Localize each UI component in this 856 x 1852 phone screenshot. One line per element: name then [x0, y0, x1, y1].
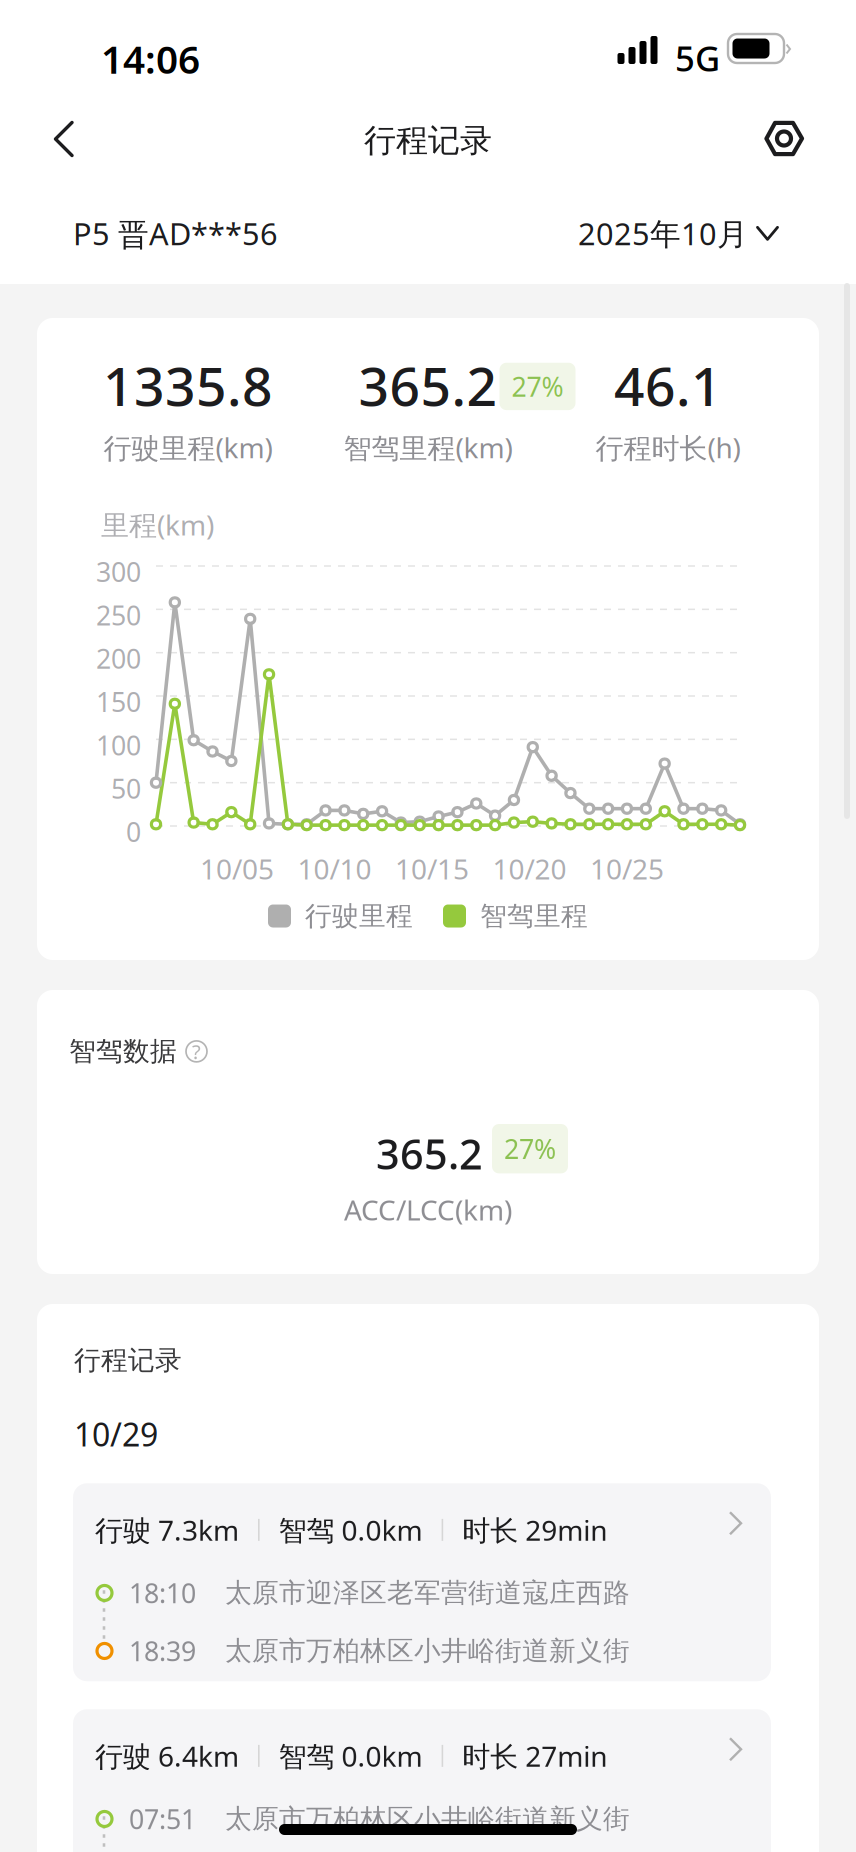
- button[interactable]: 2025年10月: [572, 199, 785, 268]
- staticText: 里程(km): [101, 506, 214, 543]
- staticText: 300: [96, 554, 141, 589]
- staticText: 250: [96, 597, 141, 633]
- staticText: 10/05: [200, 850, 274, 887]
- button[interactable]: 行驶 6.4km: [73, 1709, 771, 1852]
- staticText: 时长 27min: [462, 1737, 607, 1774]
- staticText: 行驶里程(km): [103, 429, 272, 466]
- staticText: 行驶里程: [305, 900, 413, 932]
- staticText: 07:51: [129, 1801, 196, 1837]
- staticText: 100: [96, 727, 141, 763]
- staticText: 10/10: [297, 850, 371, 887]
- staticText: 18:10: [129, 1575, 196, 1611]
- staticText: 太原市万柏林区小井峪街道新义街: [225, 1635, 630, 1667]
- staticText: 行驶 7.3km: [95, 1511, 239, 1548]
- staticText: 行程记录: [364, 121, 492, 160]
- staticText: 365.2: [358, 350, 497, 421]
- staticText: 1335.8: [103, 350, 273, 421]
- staticText: 18:39: [129, 1633, 196, 1669]
- staticText: 2025年10月: [578, 213, 748, 254]
- staticText: 14:06: [101, 33, 200, 84]
- staticText: 行驶 6.4km: [95, 1737, 239, 1774]
- staticText: 27%: [511, 369, 563, 404]
- button[interactable]: 返回: [31, 103, 97, 175]
- staticText: 行程记录: [74, 1344, 182, 1377]
- staticText: 46.1: [614, 350, 722, 421]
- staticText: 50: [111, 771, 141, 806]
- staticText: 智驾 0.0km: [279, 1737, 423, 1774]
- staticText: 5G: [675, 35, 720, 81]
- staticText: 0: [126, 814, 141, 849]
- staticText: 智驾里程(km): [343, 429, 512, 466]
- staticText: 365.2: [376, 1126, 483, 1181]
- staticText: 10/15: [395, 850, 469, 887]
- staticText: 150: [96, 684, 141, 719]
- staticText: 10/25: [590, 850, 664, 887]
- staticText: 时长 29min: [462, 1511, 607, 1548]
- button[interactable]: 设置: [744, 102, 824, 175]
- staticText: P5 晋AD***56: [73, 213, 278, 254]
- button[interactable]: 行驶 7.3km: [73, 1483, 771, 1681]
- staticText: 智驾数据: [69, 1035, 177, 1068]
- staticText: ACC/LCC(km): [344, 1191, 512, 1228]
- staticText: 10/29: [74, 1413, 158, 1455]
- staticText: 27%: [504, 1131, 556, 1166]
- staticText: 太原市迎泽区老军营街道寇庄西路: [225, 1577, 630, 1609]
- staticText: 太原市万柏林区小井峪街道新义街: [225, 1803, 630, 1835]
- staticText: 智驾里程: [480, 900, 588, 932]
- staticText: 智驾 0.0km: [279, 1511, 423, 1548]
- staticText: 200: [96, 641, 141, 676]
- staticText: ?: [192, 1038, 201, 1065]
- staticText: 行程时长(h): [595, 429, 740, 466]
- staticText: 10/20: [492, 850, 566, 887]
